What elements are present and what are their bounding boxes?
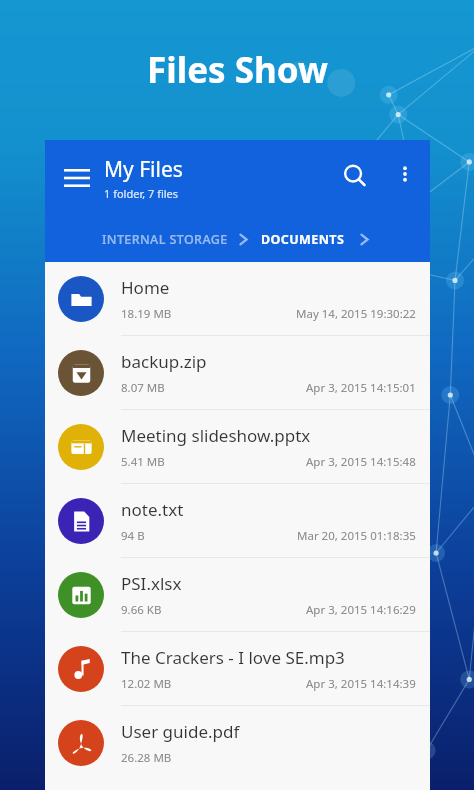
staticText: note.txt bbox=[121, 498, 184, 521]
staticText: INTERNAL STORAGE bbox=[102, 231, 228, 248]
staticText: backup.zip bbox=[121, 350, 207, 373]
staticText: 1 folder, 7 files bbox=[104, 186, 179, 201]
button[interactable]: DOCUMENTS bbox=[261, 231, 345, 248]
staticText: 26.28 MB bbox=[121, 750, 172, 766]
button[interactable]: More options bbox=[383, 152, 427, 196]
staticText: My Files bbox=[104, 155, 183, 184]
staticText: DOCUMENTS bbox=[261, 231, 345, 248]
staticText: 94 B bbox=[121, 528, 145, 544]
staticText: Apr 3, 2015 14:15:48 bbox=[306, 454, 416, 470]
staticText: 18.19 MB bbox=[121, 306, 172, 322]
staticText: The Crackers - I love SE.mp3 bbox=[121, 646, 345, 669]
button[interactable]: The Crackers - I love SE.mp3 bbox=[45, 632, 430, 705]
button[interactable]: Menu bbox=[53, 154, 101, 202]
staticText: Meeting slideshow.pptx bbox=[121, 424, 311, 447]
button[interactable]: note.txt bbox=[45, 484, 430, 557]
staticText: 9.66 KB bbox=[121, 602, 162, 618]
button[interactable]: Meeting slideshow.pptx bbox=[45, 410, 430, 483]
staticText: Mar 20, 2015 01:18:35 bbox=[297, 528, 416, 544]
button[interactable]: Home bbox=[45, 262, 430, 335]
staticText: 5.41 MB bbox=[121, 454, 165, 470]
staticText: PSI.xlsx bbox=[121, 572, 182, 595]
button[interactable]: INTERNAL STORAGE bbox=[102, 231, 228, 248]
button[interactable]: backup.zip bbox=[45, 336, 430, 409]
button[interactable]: PSI.xlsx bbox=[45, 558, 430, 631]
button[interactable]: User guide.pdf bbox=[45, 706, 430, 779]
staticText: Files Show bbox=[147, 46, 328, 94]
staticText: User guide.pdf bbox=[121, 720, 240, 743]
staticText: May 14, 2015 19:30:22 bbox=[296, 306, 416, 322]
staticText: Apr 3, 2015 14:16:29 bbox=[306, 602, 416, 618]
staticText: 12.02 MB bbox=[121, 676, 172, 692]
staticText: Home bbox=[121, 276, 170, 299]
staticText: Apr 3, 2015 14:15:01 bbox=[306, 380, 416, 396]
staticText: Apr 3, 2015 14:14:39 bbox=[306, 676, 416, 692]
button[interactable]: Search bbox=[331, 152, 379, 200]
staticText: 8.07 MB bbox=[121, 380, 165, 396]
